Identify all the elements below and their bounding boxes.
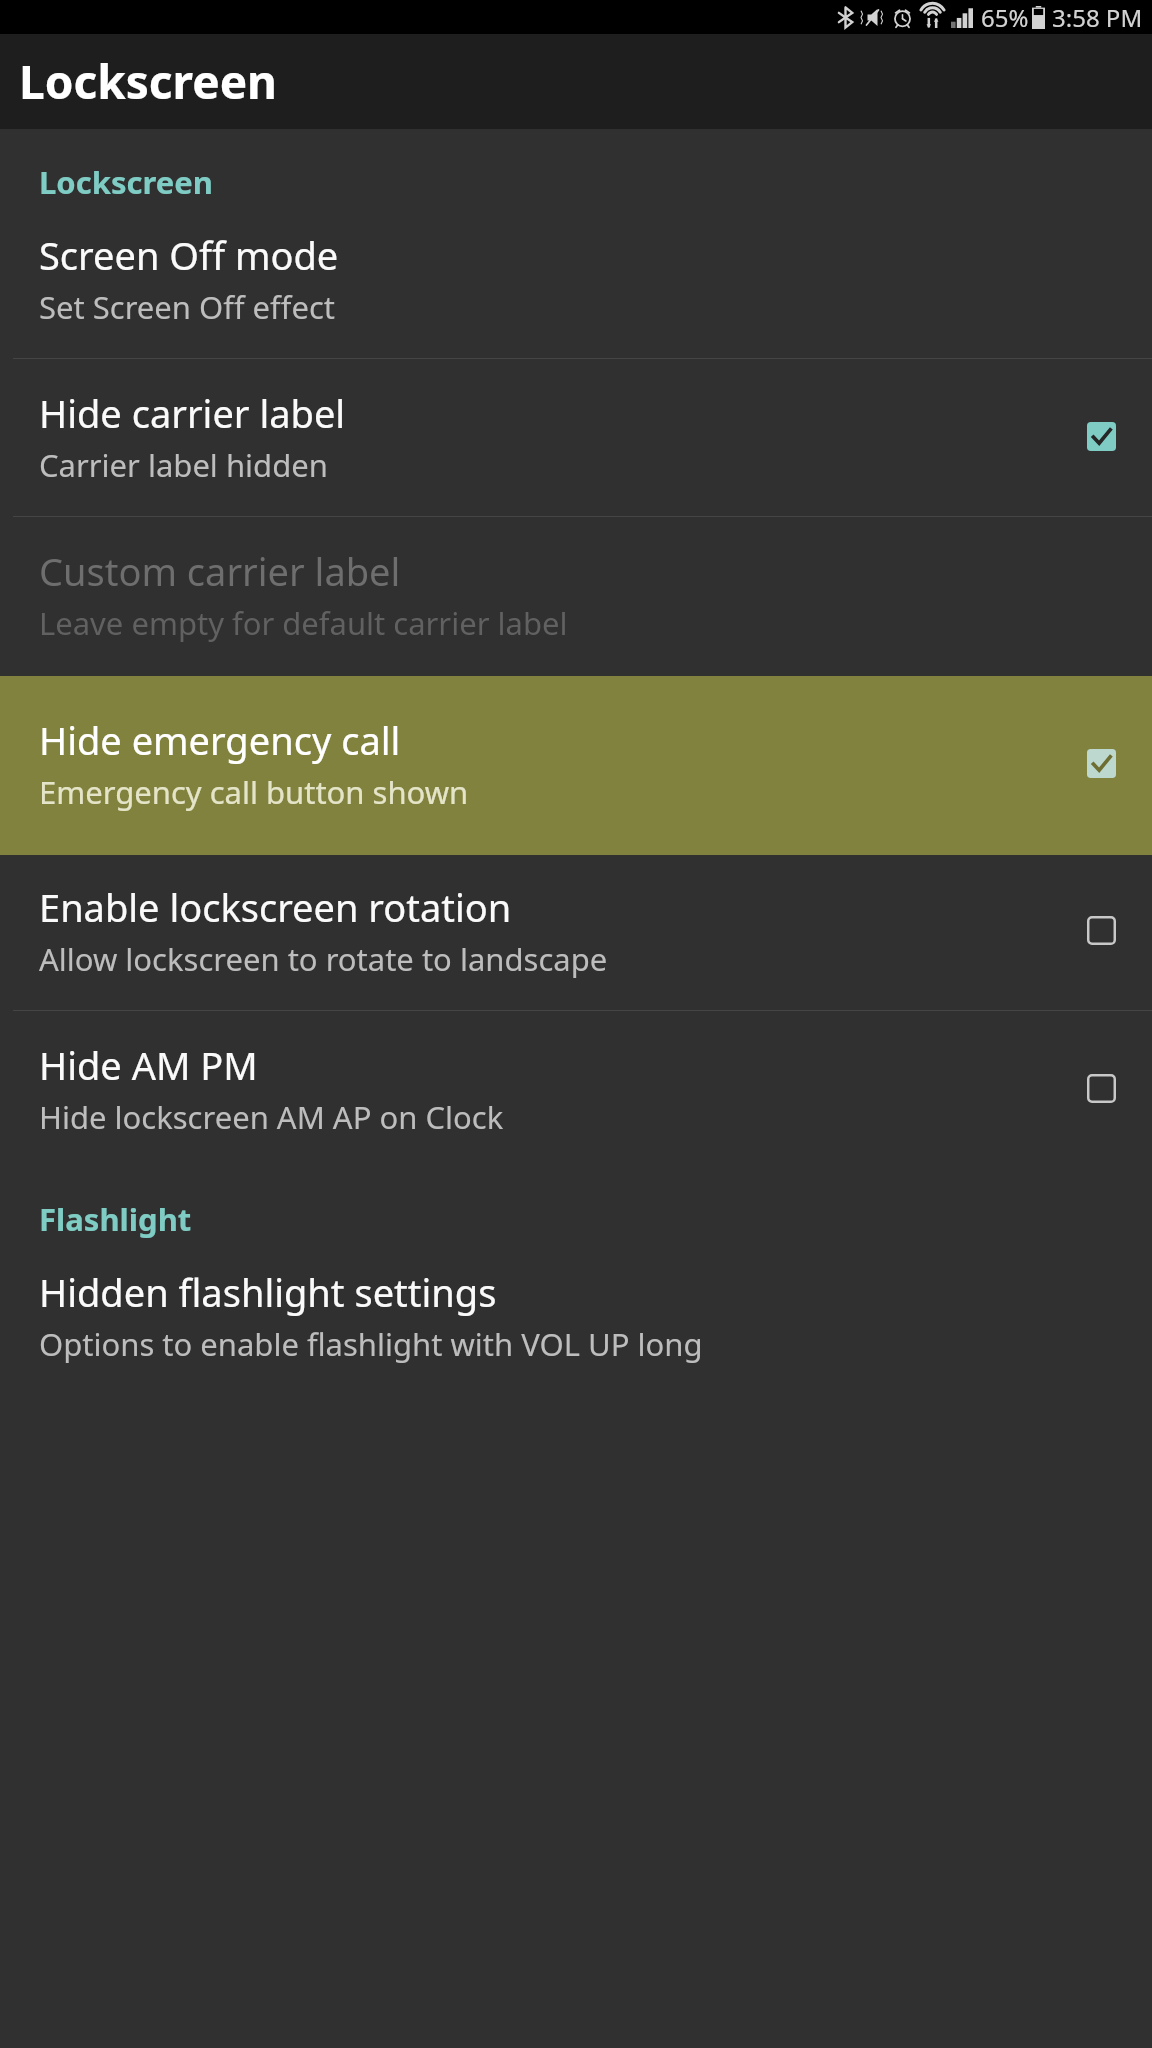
- staticText: Leave empty for default carrier label: [39, 602, 568, 644]
- button[interactable]: Hide emergency call: [0, 676, 1152, 855]
- staticText: Set Screen Off effect: [39, 286, 335, 328]
- staticText: Hide lockscreen AM AP on Clock: [39, 1096, 504, 1138]
- staticText: Hide emergency call: [39, 714, 401, 766]
- staticText: 65%: [981, 1, 1029, 34]
- staticText: Lockscreen: [39, 161, 213, 203]
- staticText: Screen Off mode: [39, 229, 339, 281]
- button[interactable]: Hide carrier label: [0, 359, 1152, 516]
- staticText: Options to enable flashlight with VOL UP…: [39, 1323, 703, 1365]
- staticText: Hide carrier label: [39, 387, 346, 439]
- button[interactable]: Unchecked: [1087, 1074, 1116, 1103]
- button[interactable]: Hidden flashlight settings: [0, 1246, 1152, 1385]
- staticText: Allow lockscreen to rotate to landscape: [39, 938, 608, 980]
- button: Custom carrier label: [0, 517, 1152, 676]
- button[interactable]: Enable lockscreen rotation: [0, 855, 1152, 1010]
- staticText: Flashlight: [39, 1198, 192, 1240]
- button[interactable]: Screen Off mode: [0, 209, 1152, 358]
- button[interactable]: Checked: [1087, 749, 1116, 778]
- staticText: Carrier label hidden: [39, 444, 328, 486]
- staticText: 3:58 PM: [1052, 1, 1143, 34]
- button[interactable]: Hide AM PM: [0, 1011, 1152, 1168]
- staticText: Emergency call button shown: [39, 771, 469, 813]
- staticText: Hide AM PM: [39, 1039, 258, 1091]
- staticText: Enable lockscreen rotation: [39, 881, 512, 933]
- button[interactable]: Checked: [1087, 422, 1116, 451]
- button[interactable]: Unchecked: [1087, 916, 1116, 945]
- staticText: Lockscreen: [19, 50, 278, 113]
- staticText: Custom carrier label: [39, 545, 401, 597]
- staticText: Hidden flashlight settings: [39, 1266, 497, 1318]
